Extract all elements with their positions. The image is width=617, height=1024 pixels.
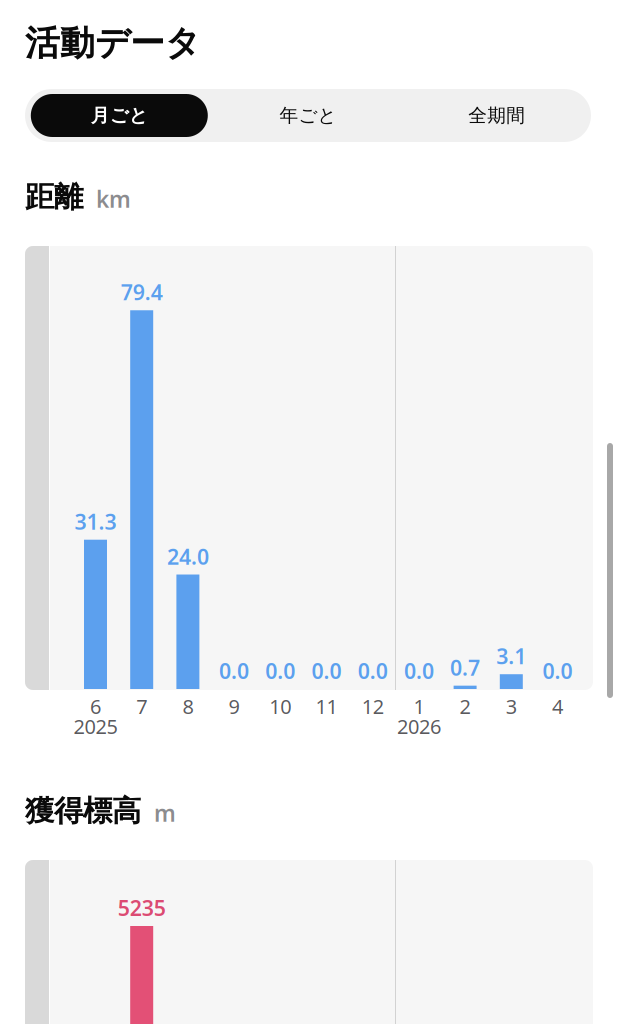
staticText: 0.7 xyxy=(450,653,480,682)
staticText: 2025 xyxy=(73,713,117,740)
staticText: 全期間 xyxy=(468,104,525,127)
staticText: 3.1 xyxy=(496,642,526,670)
staticText: 0.0 xyxy=(542,657,572,685)
staticText: 1 xyxy=(413,693,424,720)
staticText: 10 xyxy=(269,693,291,720)
staticText: 月ごと xyxy=(91,104,148,127)
staticText: 7 xyxy=(136,693,147,720)
staticText: 3 xyxy=(506,693,517,720)
staticText: 年ごと xyxy=(279,104,336,127)
staticText: m xyxy=(154,798,176,828)
staticText: 11 xyxy=(315,693,337,720)
staticText: 0.0 xyxy=(358,657,388,685)
staticText: 6 xyxy=(90,693,101,720)
staticText: 獲得標高 xyxy=(25,793,141,829)
staticText: 4 xyxy=(552,693,563,720)
staticText: 0.0 xyxy=(265,657,295,685)
staticText: 12 xyxy=(362,693,384,720)
staticText: 2026 xyxy=(397,713,441,740)
staticText: 5235 xyxy=(118,894,166,922)
staticText: 0.0 xyxy=(404,657,434,685)
button[interactable]: 全期間 xyxy=(402,89,591,142)
staticText: 距離 xyxy=(25,179,83,215)
staticText: 2 xyxy=(460,693,471,720)
staticText: 8 xyxy=(182,693,193,720)
staticText: 活動データ xyxy=(25,22,200,65)
staticText: 0.0 xyxy=(311,657,341,685)
staticText: 79.4 xyxy=(121,278,163,306)
staticText: 9 xyxy=(229,693,240,720)
staticText: 31.3 xyxy=(74,507,116,536)
button[interactable]: 月ごと xyxy=(25,89,214,142)
button[interactable]: 年ごと xyxy=(214,89,402,142)
staticText: 0.0 xyxy=(219,657,249,685)
staticText: km xyxy=(96,184,131,214)
staticText: 24.0 xyxy=(167,542,209,570)
